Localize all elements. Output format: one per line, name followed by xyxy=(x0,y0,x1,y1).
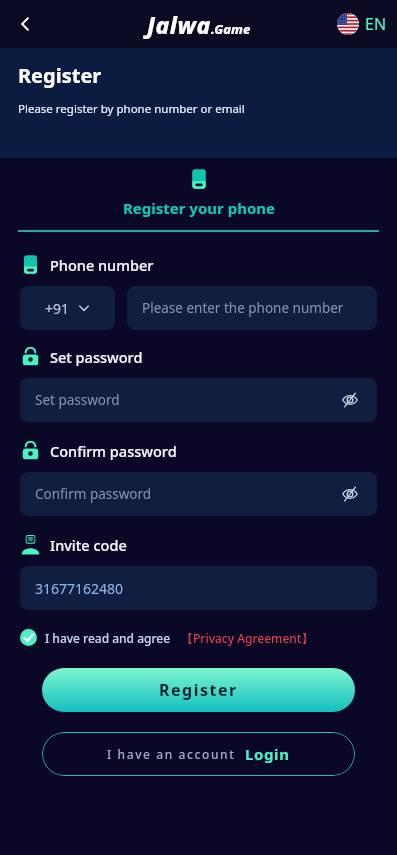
button[interactable]: EN xyxy=(337,13,387,35)
button[interactable]: 【Privacy Agreement】 xyxy=(181,630,314,646)
staticText: .Game xyxy=(211,20,251,38)
staticText: Invite code xyxy=(50,535,127,555)
staticText: Please register by phone number or email xyxy=(18,101,245,117)
staticText: 【Privacy Agreement】 xyxy=(181,630,314,646)
staticText: 31677162480 xyxy=(35,579,124,598)
staticText: Register xyxy=(18,62,102,89)
button[interactable]: I have an account xyxy=(42,732,355,776)
button[interactable]: Register xyxy=(42,668,355,712)
button[interactable]: +91 xyxy=(20,286,115,330)
button[interactable]: I have read and agree xyxy=(20,629,314,646)
staticText: Phone number xyxy=(50,255,154,275)
button[interactable]: Set password xyxy=(20,378,377,422)
staticText: Set password xyxy=(50,347,143,367)
staticText: Register xyxy=(159,679,238,701)
button[interactable]: Confirm password xyxy=(20,472,377,516)
staticText: EN xyxy=(365,13,387,35)
staticText: Please enter the phone number xyxy=(142,299,344,317)
staticText: Register your phone xyxy=(123,198,275,218)
staticText: Set password xyxy=(35,391,120,409)
button[interactable]: 31677162480 xyxy=(20,566,377,610)
staticText: I have an account xyxy=(107,746,236,762)
button[interactable]: Please enter the phone number xyxy=(127,286,377,330)
button[interactable]: Back xyxy=(6,5,44,43)
button[interactable]: Toggle password visibility xyxy=(338,388,362,412)
staticText: Confirm password xyxy=(50,441,177,461)
staticText: +91 xyxy=(45,299,70,318)
staticText: Login xyxy=(245,744,290,764)
button[interactable]: Register your phone xyxy=(123,198,275,218)
staticText: Confirm password xyxy=(35,485,152,503)
staticText: Jalwa xyxy=(147,9,211,40)
button[interactable]: Toggle password visibility xyxy=(338,482,362,506)
staticText: I have read and agree xyxy=(45,630,171,646)
